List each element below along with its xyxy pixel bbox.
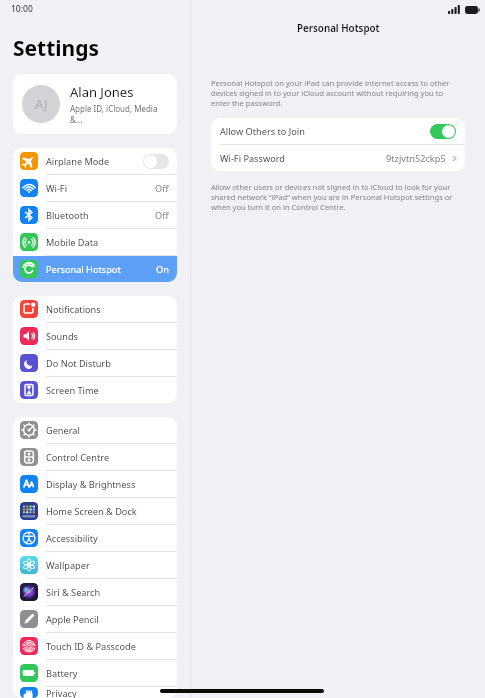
- staticText: Notifications: [46, 303, 169, 316]
- button[interactable]: AJ: [13, 74, 177, 134]
- button[interactable]: Accessibility: [13, 525, 177, 551]
- staticText: Screen Time: [46, 384, 169, 397]
- staticText: Wi-Fi: [46, 182, 155, 195]
- button[interactable]: Do Not Disturb: [13, 350, 177, 376]
- staticText: Airplane Mode: [46, 155, 143, 168]
- staticText: Personal Hotspot: [46, 263, 156, 276]
- staticText: Off: [155, 182, 169, 195]
- button[interactable]: Personal Hotspot: [13, 256, 177, 282]
- staticText: Control Centre: [46, 451, 169, 464]
- staticText: 9tzjvtn52ckp5: [386, 152, 446, 165]
- staticText: Siri & Search: [46, 586, 169, 599]
- button[interactable]: General: [13, 417, 177, 443]
- button[interactable]: Toggle: [430, 124, 456, 139]
- staticText: Personal Hotspot on your iPad can provid…: [211, 78, 461, 108]
- button[interactable]: Siri & Search: [13, 579, 177, 605]
- button[interactable]: Wi-Fi Password: [211, 145, 465, 171]
- staticText: Wallpaper: [46, 559, 169, 572]
- staticText: Allow other users or devices not signed …: [211, 182, 461, 212]
- staticText: Privacy: [46, 687, 169, 698]
- button[interactable]: Mobile Data: [13, 229, 177, 255]
- button[interactable]: Battery: [13, 660, 177, 686]
- staticText: Touch ID & Passcode: [46, 640, 169, 653]
- staticText: Off: [155, 209, 169, 222]
- staticText: Do Not Disturb: [46, 357, 169, 370]
- button[interactable]: Privacy: [13, 687, 177, 698]
- staticText: Allow Others to Join: [220, 125, 430, 138]
- staticText: On: [156, 263, 169, 276]
- staticText: Apple ID, iCloud, Media &...: [70, 103, 168, 125]
- staticText: Home Screen & Dock: [46, 505, 169, 518]
- staticText: Battery: [46, 667, 169, 680]
- staticText: 10:00: [11, 3, 33, 15]
- button[interactable]: Wallpaper: [13, 552, 177, 578]
- button[interactable]: Control Centre: [13, 444, 177, 470]
- staticText: Settings: [13, 34, 100, 63]
- staticText: General: [46, 424, 169, 437]
- button[interactable]: Airplane Mode: [13, 148, 177, 174]
- button[interactable]: Touch ID & Passcode: [13, 633, 177, 659]
- button[interactable]: Allow Others to Join: [211, 118, 465, 144]
- staticText: Bluetooth: [46, 209, 155, 222]
- staticText: Alan Jones: [70, 83, 134, 101]
- staticText: Sounds: [46, 330, 169, 343]
- staticText: Display & Brightness: [46, 478, 169, 491]
- button[interactable]: Home Screen & Dock: [13, 498, 177, 524]
- button[interactable]: Display & Brightness: [13, 471, 177, 497]
- staticText: Accessibility: [46, 532, 169, 545]
- staticText: Personal Hotspot: [297, 22, 380, 35]
- button[interactable]: Notifications: [13, 296, 177, 322]
- button[interactable]: Sounds: [13, 323, 177, 349]
- button[interactable]: Apple Pencil: [13, 606, 177, 632]
- staticText: AJ: [35, 95, 48, 113]
- button[interactable]: Screen Time: [13, 377, 177, 403]
- staticText: Mobile Data: [46, 236, 169, 249]
- button[interactable]: Toggle: [143, 154, 169, 169]
- staticText: Apple Pencil: [46, 613, 169, 626]
- button[interactable]: Bluetooth: [13, 202, 177, 228]
- button[interactable]: Wi-Fi: [13, 175, 177, 201]
- staticText: Wi-Fi Password: [220, 152, 386, 165]
